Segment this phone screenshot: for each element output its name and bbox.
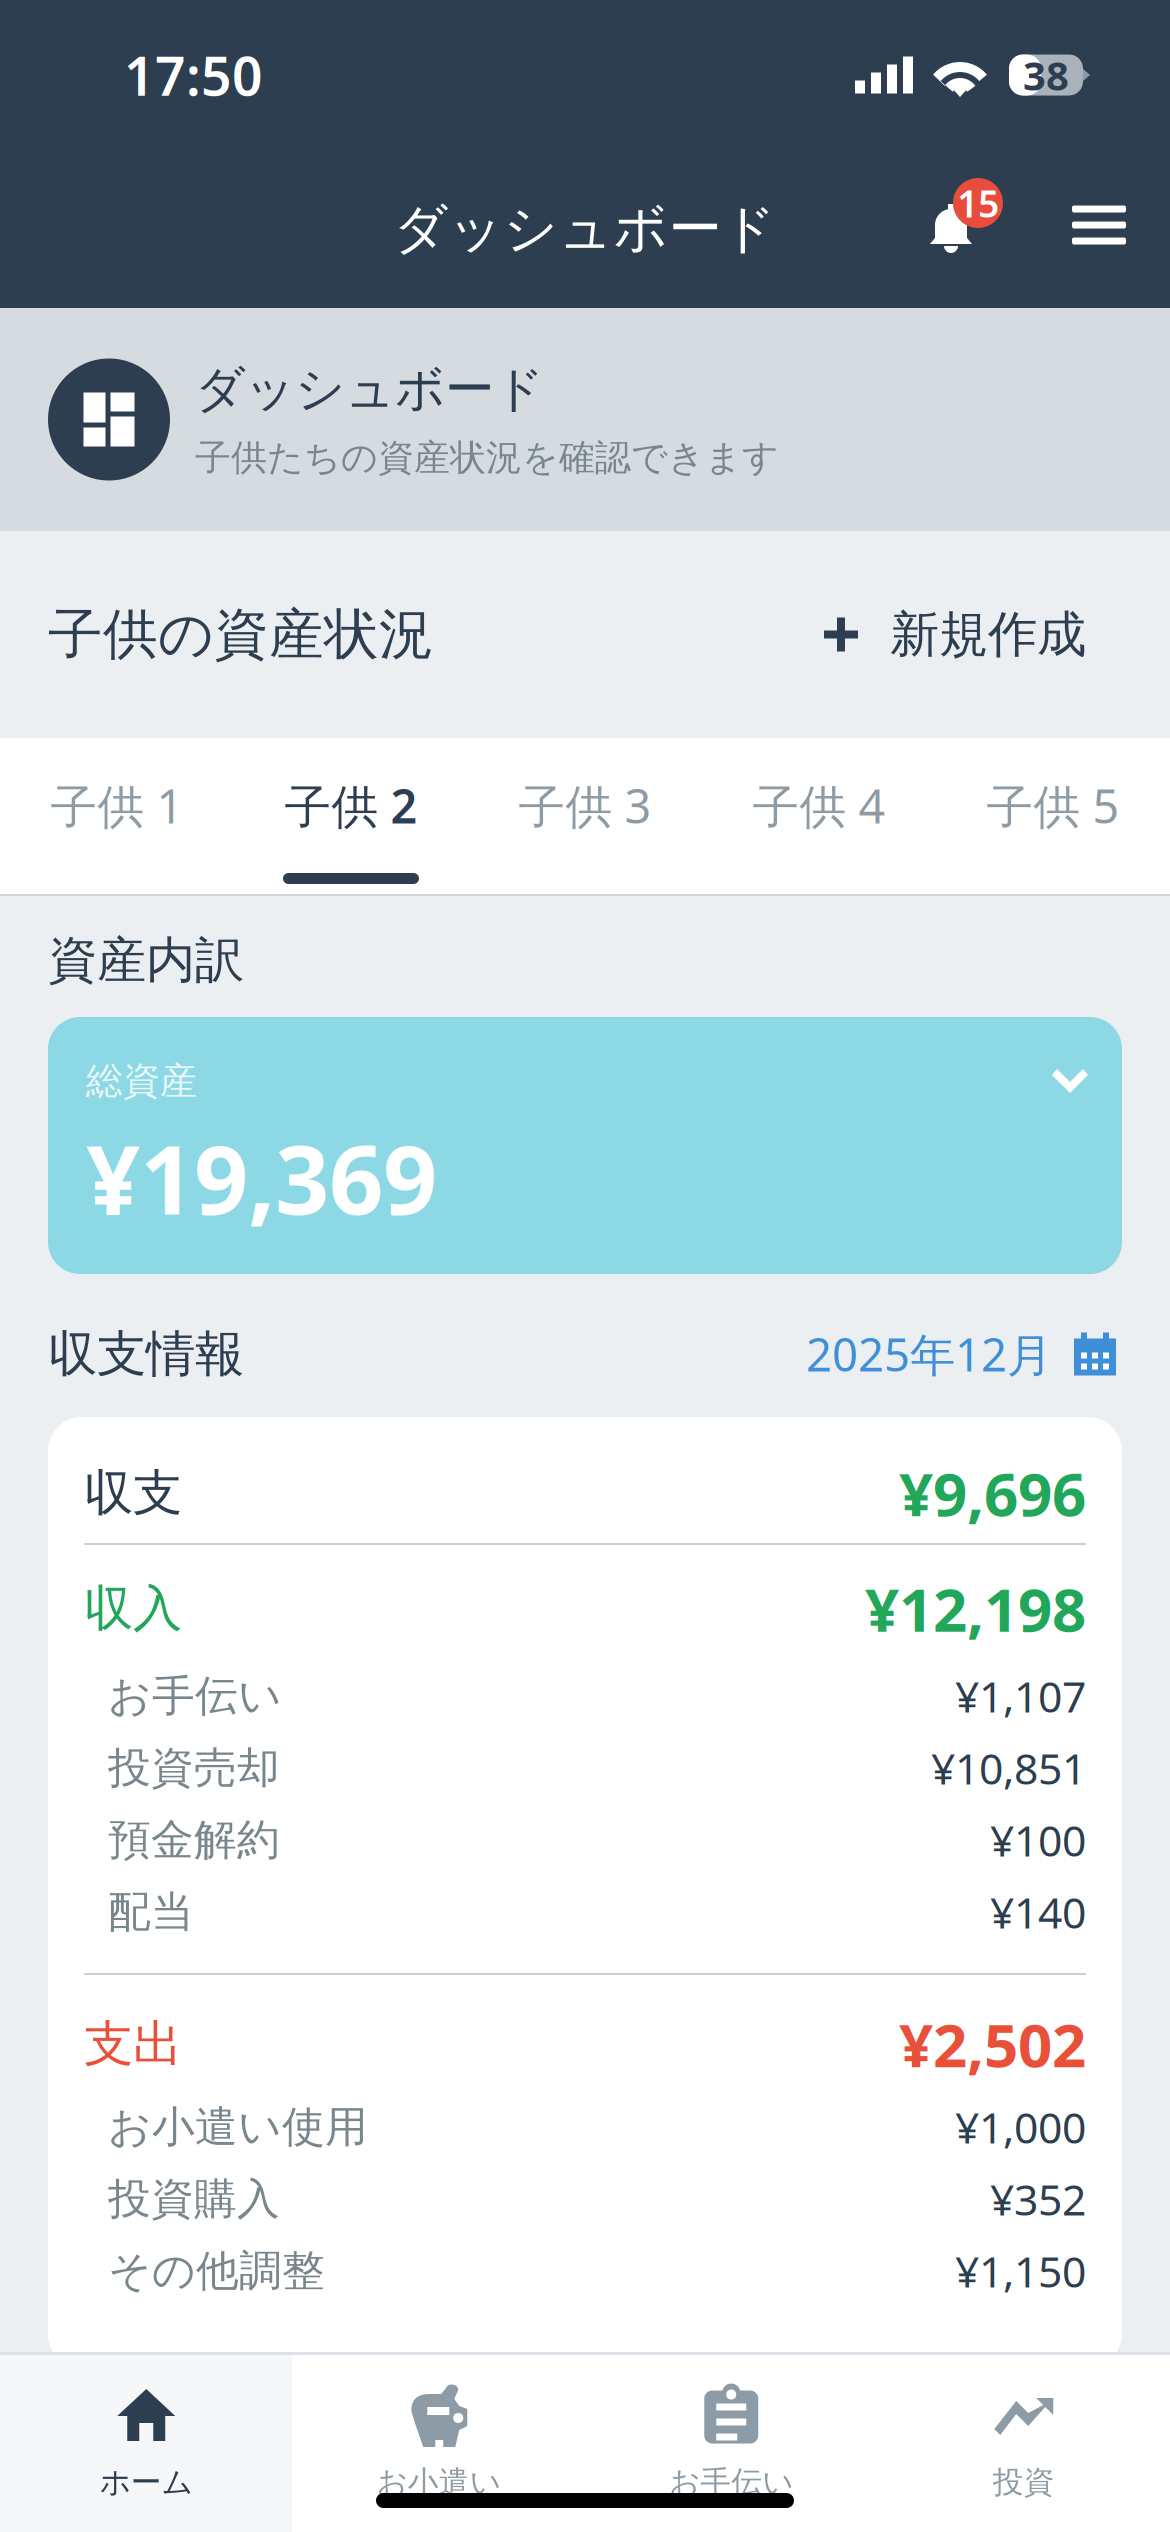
staticText: 配当 — [108, 1886, 194, 1938]
staticText: ¥9,696 — [899, 1453, 1086, 1533]
staticText: ¥12,198 — [865, 1569, 1086, 1648]
staticText: 収支情報 — [48, 1324, 244, 1384]
staticText: 子供 3 — [518, 774, 651, 836]
button[interactable]: 子供 1 — [0, 738, 234, 894]
staticText: お小遣い使用 — [108, 2101, 368, 2153]
button[interactable]: ホーム — [0, 2355, 292, 2532]
staticText: 資産内訳 — [48, 930, 244, 991]
staticText: ¥352 — [990, 2171, 1086, 2227]
staticText: 子供たちの資産状況を確認できます — [195, 436, 779, 480]
staticText: 投資売却 — [108, 1742, 280, 1794]
staticText: 子供 4 — [752, 774, 885, 836]
staticText: ダッシュボード — [393, 196, 776, 262]
staticText: 子供の資産状況 — [48, 601, 434, 668]
staticText: 支出 — [84, 2014, 182, 2074]
staticText: 子供 1 — [50, 774, 183, 836]
staticText: ¥2,502 — [899, 2004, 1086, 2084]
button[interactable]: お小遣い — [292, 2355, 585, 2532]
staticText: 子供 5 — [986, 774, 1119, 836]
staticText: 収入 — [84, 1578, 182, 1639]
staticText: 2025年12月 — [806, 1324, 1052, 1384]
staticText: お手伝い — [669, 2463, 793, 2501]
staticText: 38 — [1023, 48, 1069, 101]
button[interactable]: 子供 2 — [234, 738, 468, 894]
button[interactable]: 通知 — [917, 178, 1009, 280]
staticText: ¥1,107 — [955, 1668, 1086, 1724]
staticText: 投資購入 — [108, 2173, 280, 2225]
button[interactable]: 新規作成 — [818, 591, 1092, 677]
staticText: その他調整 — [108, 2245, 325, 2297]
staticText: 投資 — [993, 2463, 1055, 2501]
button[interactable]: 子供 3 — [468, 738, 702, 894]
staticText: ¥100 — [990, 1812, 1086, 1868]
button[interactable]: 子供 5 — [936, 738, 1170, 894]
staticText: ¥1,000 — [955, 2099, 1086, 2155]
staticText: ¥10,851 — [931, 1740, 1086, 1796]
staticText: 収支 — [84, 1463, 182, 1523]
button[interactable]: メニュー — [1054, 186, 1134, 272]
button[interactable]: お手伝い — [585, 2355, 877, 2532]
staticText: 新規作成 — [890, 604, 1086, 665]
staticText: 総資産 — [86, 1058, 197, 1104]
staticText: ¥1,150 — [955, 2243, 1086, 2299]
staticText: ホーム — [100, 2463, 193, 2501]
button[interactable]: 2025年12月 — [806, 1318, 1116, 1390]
button[interactable]: 総資産 — [48, 1017, 1122, 1274]
staticText: 子供 2 — [284, 774, 417, 836]
button[interactable]: 投資 — [877, 2355, 1170, 2532]
button[interactable]: 子供 4 — [702, 738, 936, 894]
staticText: ¥140 — [990, 1884, 1086, 1940]
staticText: ¥19,369 — [86, 1115, 437, 1241]
staticText: ダッシュボード — [195, 359, 544, 420]
staticText: 17:50 — [124, 40, 263, 110]
staticText: 15 — [957, 178, 999, 228]
staticText: お手伝い — [108, 1670, 282, 1722]
staticText: お小遣い — [377, 2463, 501, 2501]
staticText: 預金解約 — [108, 1814, 280, 1866]
